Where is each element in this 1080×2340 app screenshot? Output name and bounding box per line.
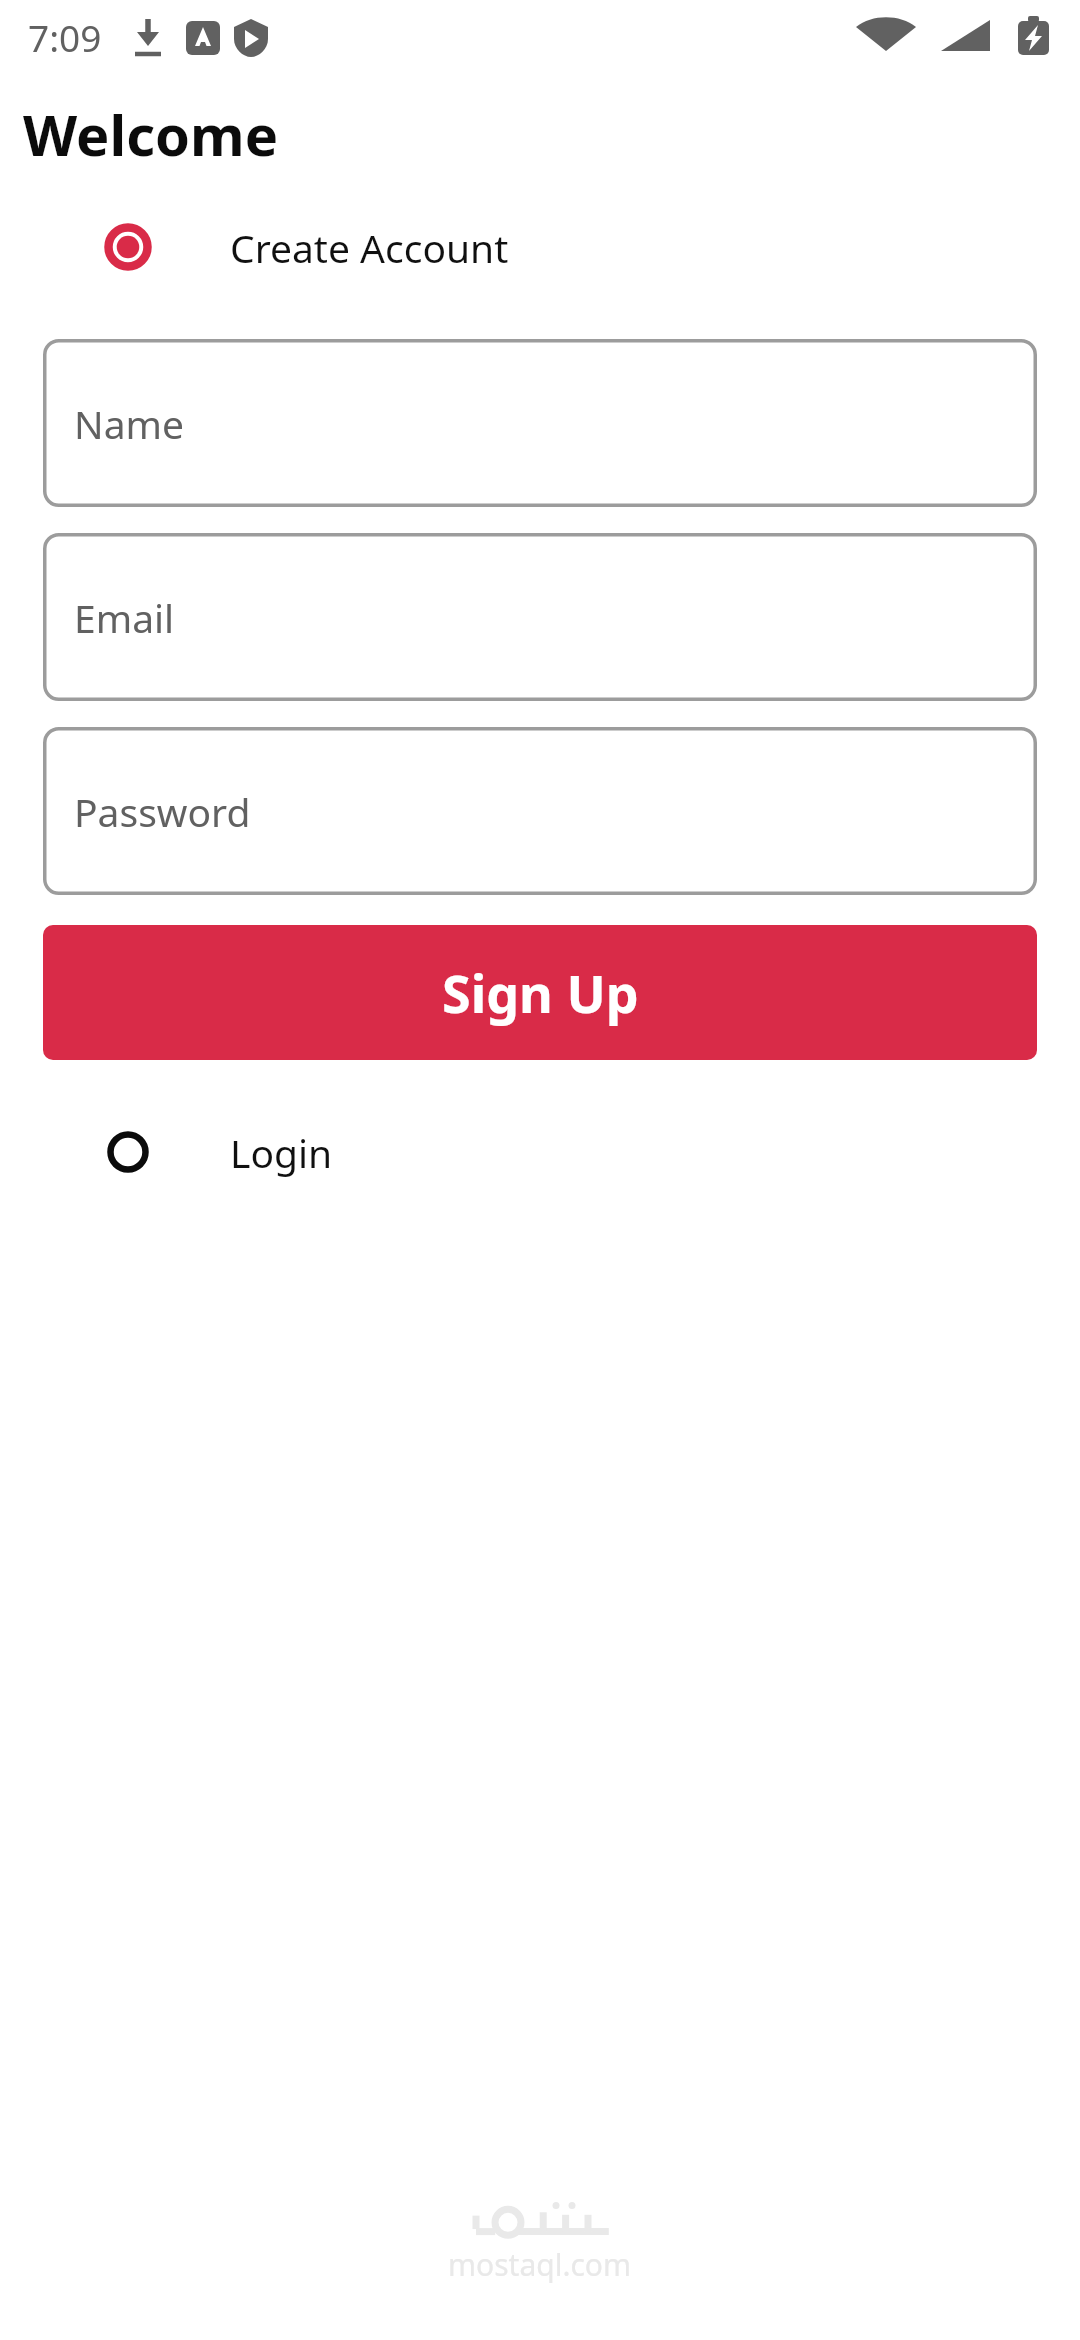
button[interactable]: Create Account bbox=[0, 207, 1080, 287]
staticText: Welcome bbox=[23, 96, 279, 172]
staticText: mostaql.com bbox=[448, 2244, 632, 2285]
button[interactable]: Email bbox=[43, 533, 1037, 701]
button[interactable]: Login bbox=[0, 1112, 1080, 1192]
button[interactable]: Name bbox=[43, 339, 1037, 507]
staticText: Create Account bbox=[230, 221, 509, 274]
button[interactable]: Sign Up bbox=[43, 925, 1037, 1060]
staticText: 7:09 bbox=[28, 12, 102, 62]
button[interactable]: Password bbox=[43, 727, 1037, 895]
staticText: Name bbox=[74, 397, 184, 450]
staticText: Sign Up bbox=[442, 957, 639, 1028]
staticText: Login bbox=[230, 1126, 333, 1179]
staticText: Email bbox=[74, 591, 175, 644]
staticText: Password bbox=[74, 785, 251, 838]
